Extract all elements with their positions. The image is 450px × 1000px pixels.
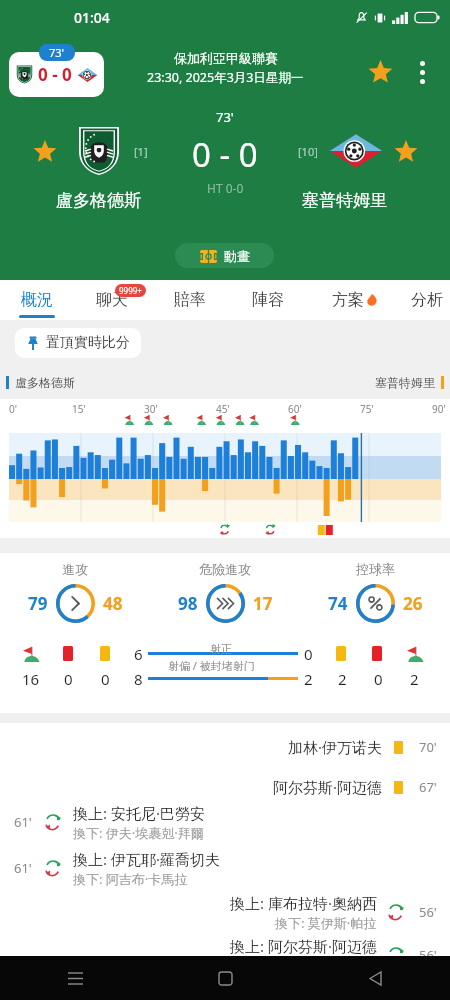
staticText: 控球率 — [356, 561, 395, 577]
staticText: 危險進攻 — [199, 561, 251, 577]
staticText: 進攻 — [62, 561, 88, 577]
staticText: 0 — [304, 644, 313, 664]
staticText: 90' — [432, 402, 446, 416]
staticText: 0 - 0 — [38, 63, 72, 86]
staticText: 換上: 阿尔芬斯·阿迈德 — [230, 936, 377, 956]
staticText: HT 0-0 — [207, 180, 244, 196]
staticText: 45' — [216, 402, 230, 416]
staticText: 保加利亞甲級聯賽 — [174, 50, 278, 66]
button[interactable]: 聊天 — [73, 280, 151, 320]
staticText: 0 - 0 — [192, 132, 258, 177]
staticText: 01:04 — [74, 8, 110, 27]
staticText: 30' — [144, 402, 158, 416]
staticText: [10] — [298, 144, 318, 159]
staticText: 60' — [288, 402, 302, 416]
staticText: 塞普特姆里 — [302, 190, 387, 211]
staticText: 73' — [216, 108, 234, 126]
staticText: 2 — [304, 669, 313, 689]
staticText: 9999+ — [119, 285, 142, 296]
staticText: 56' — [419, 903, 437, 921]
button[interactable]: 0 - 0 — [9, 52, 104, 97]
button[interactable]: 陣容 — [229, 280, 307, 320]
staticText: 塞普特姆里 — [375, 375, 435, 390]
button[interactable]: Favourite away team — [394, 140, 418, 164]
staticText: [1] — [134, 144, 148, 159]
staticText: 70' — [419, 738, 437, 756]
button[interactable]: 61' — [14, 849, 450, 887]
staticText: 0' — [9, 402, 17, 416]
staticText: 陣容 — [252, 290, 284, 310]
staticText: 48 — [103, 592, 123, 615]
button[interactable]: 控球率 — [300, 561, 450, 623]
button[interactable]: 動畫 — [175, 243, 274, 268]
staticText: 15' — [72, 402, 86, 416]
staticText: 98 — [178, 592, 198, 615]
staticText: 換下: 伊夫·埃裹剋·拜爾 — [73, 824, 204, 841]
button[interactable]: Back — [300, 956, 450, 1000]
staticText: 射正 — [210, 642, 232, 656]
staticText: 阿尔芬斯·阿迈德 — [273, 777, 383, 797]
staticText: 賠率 — [174, 290, 206, 310]
button[interactable]: 加林·伊万诺夫 — [0, 734, 437, 760]
staticText: 換下: 莫伊斯·帕拉 — [275, 914, 377, 931]
button[interactable]: 換上: 阿尔芬斯·阿迈德 — [0, 936, 437, 974]
staticText: 67' — [419, 778, 437, 796]
button[interactable]: More options — [407, 57, 437, 87]
button[interactable]: 置頂實時比分 — [15, 328, 141, 358]
staticText: 0 — [64, 669, 73, 689]
staticText: 0 — [101, 669, 110, 689]
staticText: 6 — [134, 644, 143, 664]
button[interactable]: 分析 — [403, 280, 450, 320]
staticText: 61' — [14, 859, 32, 877]
staticText: 概況 — [21, 290, 53, 310]
staticText: 56' — [419, 946, 437, 964]
staticText: 分析 — [411, 290, 443, 310]
button[interactable]: Recents — [0, 956, 150, 1000]
staticText: 0 — [374, 669, 383, 689]
button[interactable]: 阿尔芬斯·阿迈德 — [0, 774, 437, 800]
button[interactable]: Favourite — [365, 57, 395, 87]
staticText: 74 — [328, 592, 348, 615]
button[interactable]: 進攻 — [0, 561, 150, 623]
staticText: 79 — [28, 592, 48, 615]
button[interactable]: 方案 — [307, 280, 403, 320]
staticText: 加林·伊万诺夫 — [288, 737, 383, 757]
staticText: 置頂實時比分 — [46, 334, 130, 352]
staticText: 2 — [410, 669, 419, 689]
button[interactable]: Home — [150, 956, 300, 1000]
button[interactable]: 危險進攻 — [150, 561, 300, 623]
button[interactable]: Favourite home team — [33, 140, 57, 164]
staticText: 換上: 伊瓦耶·羅喬切夫 — [73, 849, 220, 869]
staticText: 換下: 阿吉布·卡馬拉 — [73, 870, 188, 887]
button[interactable]: 6 — [0, 641, 450, 691]
staticText: 方案 — [332, 290, 364, 310]
button[interactable]: 概況 — [0, 280, 73, 320]
staticText: 16 — [22, 669, 40, 689]
button[interactable]: 賠率 — [151, 280, 229, 320]
staticText: 2 — [338, 669, 347, 689]
button[interactable]: 換上: 庫布拉特·奧納西 — [0, 893, 437, 931]
staticText: 換上: 安托尼·巴勞安 — [73, 803, 205, 823]
staticText: 73' — [49, 45, 65, 60]
staticText: 8 — [134, 669, 143, 689]
staticText: 75' — [360, 402, 374, 416]
staticText: 26 — [403, 592, 423, 615]
button[interactable]: 保加利亞甲級聯賽 — [147, 50, 304, 86]
staticText: 17 — [253, 592, 273, 615]
staticText: 聊天 — [96, 290, 128, 310]
button[interactable]: 61' — [14, 803, 450, 841]
staticText: 盧多格德斯 — [56, 190, 141, 211]
staticText: 盧多格德斯 — [15, 375, 75, 390]
staticText: 動畫 — [224, 248, 250, 264]
staticText: 射偏 / 被封堵射门 — [168, 658, 255, 673]
staticText: 換上: 庫布拉特·奧納西 — [230, 893, 377, 913]
staticText: 23:30, 2025年3月3日星期一 — [147, 69, 304, 86]
staticText: 61' — [14, 813, 32, 831]
